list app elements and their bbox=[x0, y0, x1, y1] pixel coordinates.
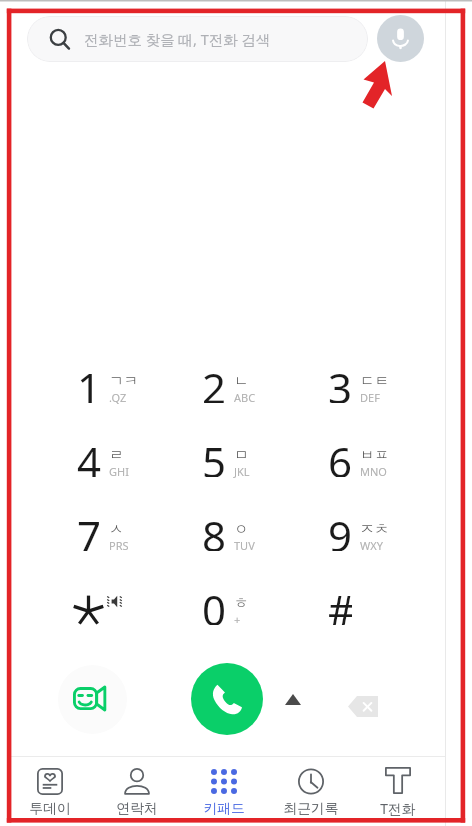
staticText: ㄷㅌ bbox=[360, 372, 389, 390]
staticText: 전화번호 찾을 때, T전화 검색 bbox=[84, 29, 271, 49]
staticText: ㄴ bbox=[234, 372, 249, 390]
button[interactable]: 4 bbox=[46, 418, 171, 492]
button[interactable]: 0 bbox=[171, 566, 297, 640]
staticText: JKL bbox=[234, 464, 250, 479]
button[interactable]: 9 bbox=[297, 492, 423, 566]
staticText: ㄱㅋ bbox=[109, 372, 138, 390]
button[interactable]: Call bbox=[191, 663, 263, 735]
button[interactable]: 전화번호 찾을 때, T전화 검색 bbox=[27, 16, 368, 62]
button[interactable]: 투데이 bbox=[7, 757, 93, 822]
button[interactable]: 1 bbox=[46, 344, 171, 418]
button[interactable]: 최근기록 bbox=[267, 757, 354, 822]
button[interactable]: T전화 bbox=[354, 757, 441, 822]
staticText: WXY bbox=[360, 538, 383, 553]
staticText: ㅎ bbox=[234, 594, 249, 612]
staticText: 최근기록 bbox=[283, 800, 339, 817]
staticText: ㅂㅍ bbox=[360, 446, 389, 464]
button[interactable]: # bbox=[297, 566, 423, 640]
button[interactable]: 7 bbox=[46, 492, 171, 566]
staticText: T전화 bbox=[380, 799, 416, 818]
staticText: .QZ bbox=[109, 390, 127, 405]
button[interactable]: Expand bbox=[275, 681, 311, 717]
button[interactable]: Video call bbox=[58, 665, 127, 734]
staticText: 연락처 bbox=[116, 800, 158, 817]
staticText: 키패드 bbox=[203, 800, 245, 817]
staticText: ㅅ bbox=[109, 520, 124, 538]
staticText: 1 bbox=[77, 359, 101, 403]
button[interactable]: Backspace bbox=[341, 684, 385, 728]
staticText: ABC bbox=[234, 390, 256, 405]
staticText: # bbox=[328, 581, 352, 625]
staticText: 3 bbox=[328, 359, 352, 403]
staticText: + bbox=[234, 612, 241, 627]
button[interactable]: 5 bbox=[171, 418, 297, 492]
button[interactable]: 3 bbox=[297, 344, 423, 418]
button[interactable]: 키패드 bbox=[180, 757, 267, 822]
staticText: GHI bbox=[109, 464, 129, 479]
staticText: 투데이 bbox=[29, 800, 71, 817]
staticText: TUV bbox=[234, 538, 255, 553]
staticText: ㅈㅊ bbox=[360, 520, 389, 538]
staticText: ㅇ bbox=[234, 520, 249, 538]
staticText: 4 bbox=[77, 433, 101, 477]
button[interactable]: Voice search bbox=[377, 15, 424, 62]
staticText: 2 bbox=[202, 359, 226, 403]
staticText: 6 bbox=[328, 433, 352, 477]
staticText: PRS bbox=[109, 538, 129, 553]
staticText: 8 bbox=[202, 507, 226, 551]
staticText: MNO bbox=[360, 464, 387, 479]
button[interactable]: 연락처 bbox=[93, 757, 180, 822]
button[interactable]: 2 bbox=[171, 344, 297, 418]
button[interactable]: 6 bbox=[297, 418, 423, 492]
staticText: DEF bbox=[360, 390, 380, 405]
button[interactable] bbox=[46, 566, 171, 640]
staticText: 0 bbox=[202, 581, 226, 625]
staticText: 5 bbox=[202, 433, 226, 477]
staticText: 9 bbox=[328, 507, 352, 551]
button[interactable]: 8 bbox=[171, 492, 297, 566]
staticText: ㄹ bbox=[109, 446, 124, 464]
staticText: 7 bbox=[77, 507, 101, 551]
staticText: ㅁ bbox=[234, 446, 249, 464]
